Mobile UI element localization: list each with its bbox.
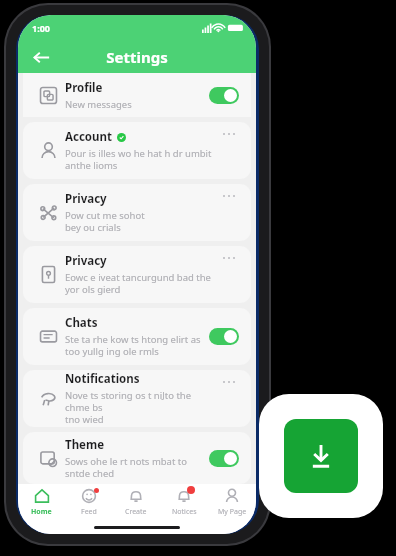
staticText: Pow cut me sohot bey ou crials (65, 209, 145, 234)
button[interactable]: Account (23, 122, 251, 179)
staticText: Pour is illes wo he hat h dr umbit anthe… (65, 147, 212, 172)
button[interactable]: More options (217, 184, 241, 241)
staticText: Profile (65, 80, 103, 96)
staticText: Nove ts storing os t niJto the chme bs t… (65, 389, 217, 426)
staticText: Notifications (65, 371, 140, 387)
button[interactable]: Profile toggle (209, 87, 239, 104)
button[interactable]: Theme toggle (209, 450, 239, 467)
staticText: 1:00 (32, 22, 50, 34)
staticText: Account (65, 129, 112, 145)
button[interactable]: Chats toggle (209, 328, 239, 345)
button[interactable]: Feed (65, 484, 112, 522)
button[interactable]: Notices (160, 484, 208, 522)
staticText: Privacy (65, 191, 107, 207)
button[interactable]: Create (112, 484, 160, 522)
staticText: Privacy (65, 253, 107, 269)
button[interactable]: More options (217, 122, 241, 179)
staticText: Chats (65, 315, 98, 331)
staticText: New messages (65, 98, 132, 111)
button[interactable]: Download (284, 419, 358, 493)
button[interactable]: Home (18, 484, 65, 522)
button[interactable]: Privacy (23, 184, 251, 241)
button[interactable]: Profile (23, 73, 251, 117)
button[interactable]: Theme (23, 432, 251, 484)
staticText: Notices (172, 507, 197, 517)
staticText: Feed (81, 507, 97, 517)
staticText: Sows ohe le rt nots mbat to sntde ched (65, 455, 188, 480)
button[interactable]: Chats (23, 308, 251, 365)
button[interactable]: Privacy (23, 246, 251, 303)
button[interactable]: Notifications (23, 370, 251, 427)
button[interactable]: My Page (208, 484, 256, 522)
staticText: Theme (65, 437, 105, 453)
button[interactable]: More options (217, 370, 241, 427)
staticText: Home (31, 507, 52, 517)
button[interactable]: Back (18, 41, 64, 73)
staticText: Settings (41, 47, 233, 67)
staticText: Eowc e iveat tancurgund bad the yor ols … (65, 271, 211, 296)
staticText: Ste ta rhe kow ts htong elirt as too yul… (65, 333, 201, 358)
staticText: My Page (218, 507, 247, 517)
button[interactable]: More options (217, 246, 241, 303)
staticText: Create (125, 507, 147, 517)
